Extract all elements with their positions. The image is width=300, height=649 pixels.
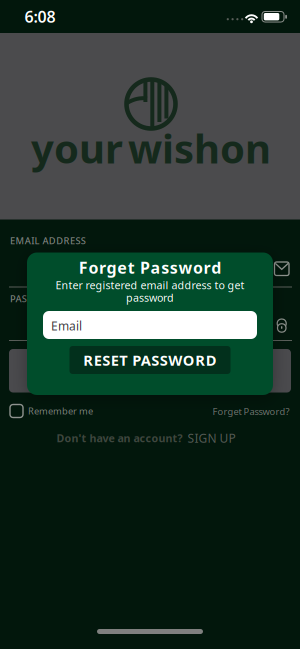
staticText: RESET PASSWORD: [83, 350, 217, 370]
button[interactable]: Remember me: [10, 404, 93, 417]
staticText: 6:08: [24, 6, 55, 27]
button[interactable]: SIGN UP: [187, 430, 235, 446]
staticText: Don't have an account?: [56, 431, 182, 445]
button[interactable]: Forget Password?: [212, 405, 289, 418]
button[interactable]: RESET PASSWORD: [69, 346, 230, 374]
button[interactable]: Login: [9, 349, 291, 392]
staticText: Email: [51, 318, 82, 334]
staticText: EMAIL ADDRESS: [10, 234, 86, 247]
staticText: Forget Password?: [212, 405, 289, 418]
button[interactable]: Email: [43, 311, 257, 339]
staticText: wishon: [128, 121, 271, 174]
staticText: password: [126, 290, 174, 305]
staticText: PASSWORD: [10, 292, 63, 305]
staticText: Enter registered email address to get: [55, 278, 244, 292]
staticText: Forget Password: [79, 257, 221, 278]
staticText: Remember me: [28, 405, 93, 417]
staticText: your: [31, 121, 123, 174]
staticText: SIGN UP: [187, 430, 235, 446]
